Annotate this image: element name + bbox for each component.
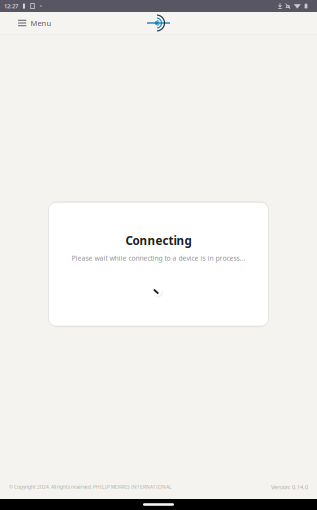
staticText: 12:27 [4, 2, 18, 10]
staticText: Version: 0.14.0 [271, 483, 308, 491]
staticText: Connecting [125, 233, 191, 248]
button[interactable]: Menu [12, 13, 57, 33]
staticText: Menu [30, 18, 51, 28]
staticText: Please wait while connecting to a device… [71, 253, 245, 263]
staticText: © Copyright 2024. All rights reserved. P… [9, 484, 172, 490]
